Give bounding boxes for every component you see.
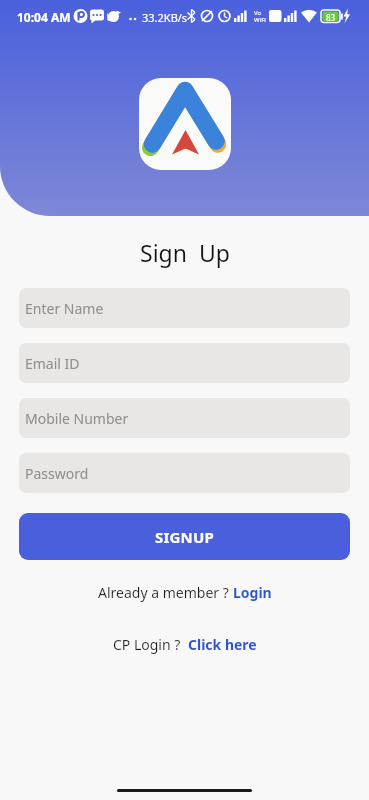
staticText: Sign Up xyxy=(140,237,230,268)
staticText: 33.2KB/s xyxy=(142,10,188,25)
staticText: Enter Name xyxy=(25,299,104,318)
staticText: Mobile Number xyxy=(25,409,129,428)
button[interactable]: Click here xyxy=(188,635,257,654)
staticText: Email ID xyxy=(25,354,80,373)
staticText: CP Login ? xyxy=(113,635,188,654)
button[interactable]: SIGNUP xyxy=(19,513,350,560)
staticText: Password xyxy=(25,464,89,483)
staticText: Login xyxy=(233,583,272,602)
button[interactable]: Enter Name xyxy=(19,288,350,328)
staticText: Vo WiFi xyxy=(254,9,266,24)
staticText: Click here xyxy=(188,635,257,654)
staticText: SIGNUP xyxy=(155,527,215,547)
staticText: 10:04 AM xyxy=(17,9,71,25)
staticText: 83 xyxy=(326,12,336,23)
button[interactable]: Login xyxy=(233,583,272,602)
button[interactable]: Mobile Number xyxy=(19,398,350,438)
button[interactable]: Password xyxy=(19,453,350,493)
staticText: Already a member ? xyxy=(98,583,233,602)
button[interactable]: Email ID xyxy=(19,343,350,383)
